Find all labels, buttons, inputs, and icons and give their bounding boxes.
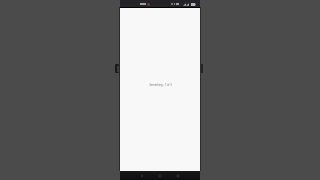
staticText: Something - 1 of 3 (149, 83, 172, 87)
button[interactable]: Back (120, 171, 142, 180)
button[interactable]: Recent apps (178, 171, 200, 180)
button[interactable]: Home (142, 171, 178, 180)
